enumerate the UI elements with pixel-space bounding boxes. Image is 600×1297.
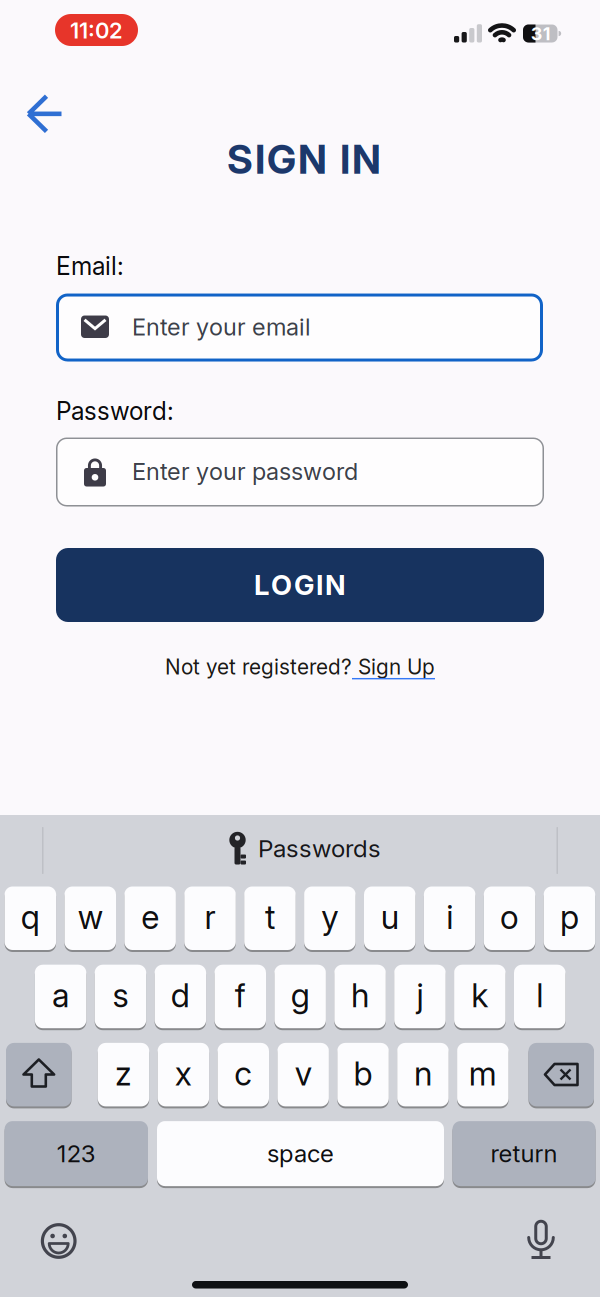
staticText: j: [416, 976, 423, 1015]
staticText: 31: [531, 23, 551, 45]
staticText: 11:02: [70, 17, 123, 44]
staticText: s: [112, 976, 128, 1015]
staticText: Enter your password: [132, 457, 358, 486]
staticText: o: [500, 897, 519, 937]
staticText: w: [78, 897, 103, 937]
staticText: e: [141, 897, 159, 937]
staticText: h: [351, 976, 369, 1015]
staticText: n: [414, 1054, 432, 1093]
staticText: S I G N I N: [227, 136, 381, 183]
staticText: d: [171, 976, 190, 1015]
staticText: m: [469, 1054, 497, 1093]
staticText: l: [536, 976, 543, 1015]
staticText: L O G I N: [254, 568, 346, 602]
staticText: g: [291, 976, 310, 1015]
staticText: q: [21, 897, 40, 937]
staticText: Email:: [56, 251, 124, 281]
staticText: a: [52, 976, 69, 1015]
staticText: space: [267, 1139, 334, 1168]
staticText: b: [354, 1054, 373, 1093]
staticText: i: [446, 897, 453, 937]
staticText: r: [204, 897, 215, 937]
staticText: y: [321, 897, 338, 937]
staticText: k: [471, 976, 488, 1015]
staticText: Enter your email: [132, 312, 311, 341]
staticText: p: [560, 897, 579, 937]
staticText: v: [295, 1054, 312, 1093]
staticText: t: [265, 897, 275, 937]
staticText: f: [235, 976, 246, 1015]
staticText: Not yet registered? Sign Up: [165, 654, 435, 680]
staticText: z: [115, 1054, 132, 1093]
staticText: u: [381, 897, 399, 937]
staticText: c: [234, 1054, 252, 1093]
staticText: Passwords: [258, 834, 381, 863]
staticText: Password:: [56, 396, 174, 426]
staticText: return: [490, 1139, 557, 1168]
staticText: 123: [57, 1139, 96, 1168]
staticText: x: [175, 1054, 192, 1093]
